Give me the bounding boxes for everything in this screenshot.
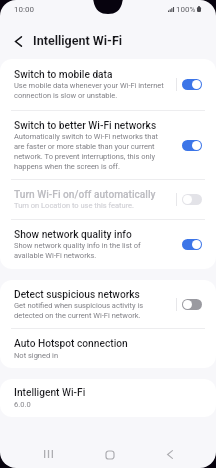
staticText: Show network quality info [14,229,132,241]
staticText: Switch to better Wi-Fi networks [14,120,157,132]
button[interactable]: Detect suspicious networks [0,280,216,328]
button[interactable]: Switch to mobile data [0,59,216,110]
staticText: Get notified when suspicious activity is… [14,301,144,320]
staticText: Turn on Location to use this feature. [14,201,135,210]
staticText: Intelligent Wi-Fi [33,33,123,48]
button[interactable]: Toggle [182,194,202,205]
staticText: Not signed in [14,351,59,360]
staticText: Show network quality info in the list of… [14,241,141,260]
button[interactable]: Show network quality info [0,220,216,269]
staticText: Turn Wi-Fi on/off automatically [14,189,156,201]
button[interactable]: Toggle [182,299,202,310]
button[interactable]: Toggle [182,239,202,250]
staticText: Automatically switch to Wi-Fi networks t… [14,132,158,171]
button[interactable]: Turn Wi-Fi on/off automatically [0,180,216,219]
button[interactable]: Switch to better Wi-Fi networks [0,111,216,179]
button[interactable]: Toggle [182,140,202,151]
button[interactable]: Intelligent Wi-Fi [0,379,216,417]
button[interactable]: Toggle [182,79,202,90]
button[interactable]: Back [7,30,29,52]
staticText: 100% [176,5,196,14]
button[interactable]: Recents [32,438,64,468]
button[interactable]: Home [94,439,126,468]
staticText: Switch to mobile data [14,69,113,81]
button[interactable]: Back [154,438,186,468]
staticText: Intelligent Wi-Fi [14,387,86,399]
button[interactable]: Auto Hotspot connection [0,329,216,368]
staticText: Auto Hotspot connection [14,338,128,350]
staticText: Use mobile data whenever your Wi-Fi inte… [14,81,164,100]
staticText: 6.0.0 [14,400,31,409]
staticText: 10:00 [14,5,34,14]
staticText: Detect suspicious networks [14,289,140,301]
